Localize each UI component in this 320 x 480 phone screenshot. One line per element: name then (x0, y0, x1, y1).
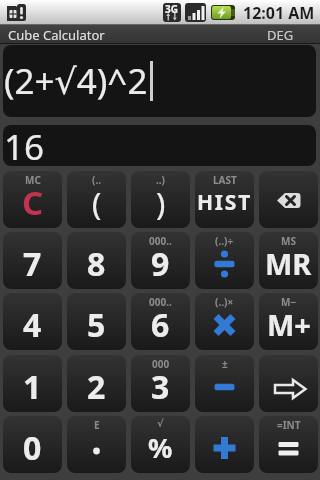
staticText: M− (281, 295, 297, 309)
button[interactable]: M− (259, 293, 318, 350)
staticText: E (94, 418, 100, 432)
staticText: MR (265, 244, 312, 283)
staticText: 2 (87, 365, 106, 409)
staticText: C (22, 180, 44, 225)
button[interactable]: 1 (3, 355, 62, 412)
staticText: 6 (151, 303, 170, 347)
staticText: Cube Calculator (8, 26, 105, 44)
button[interactable]: ± (195, 355, 254, 412)
button[interactable]: (..)× (195, 293, 254, 350)
staticText: (2+√4)^2 (4, 57, 148, 105)
button[interactable]: 0 (3, 416, 62, 473)
button[interactable]: 2 (67, 355, 126, 412)
staticText: 000 (152, 357, 170, 371)
button[interactable]: 5 (67, 293, 126, 350)
staticText: 3G (165, 2, 178, 16)
staticText: HIST (197, 188, 253, 217)
staticText: 4 (23, 303, 42, 347)
button[interactable]: 7 (3, 232, 62, 289)
staticText: 000.. (149, 295, 172, 309)
button[interactable]: MS (259, 232, 318, 289)
staticText: ) (156, 182, 166, 224)
staticText: 5 (87, 303, 106, 347)
staticText: 0 (23, 426, 42, 470)
button[interactable]: =INT (259, 416, 318, 473)
staticText: DEG (267, 26, 294, 44)
staticText: 16 (4, 125, 45, 164)
staticText: MS (281, 234, 296, 248)
button[interactable]: 000.. (131, 293, 190, 350)
staticText: 000.. (149, 234, 172, 248)
button[interactable] (259, 171, 318, 228)
staticText: (..)÷ (215, 234, 234, 248)
button[interactable] (259, 355, 318, 412)
staticText: (.. (92, 173, 102, 187)
button[interactable]: E (67, 416, 126, 473)
button[interactable]: √ (131, 416, 190, 473)
staticText: ± (222, 357, 228, 371)
staticText: M+ (267, 305, 311, 344)
staticText: 12:01 AM (243, 2, 315, 24)
staticText: ..) (156, 173, 166, 187)
staticText: % (148, 429, 173, 466)
staticText: LAST (213, 173, 237, 187)
staticText: ( (92, 182, 102, 224)
button[interactable]: ..) (131, 171, 190, 228)
staticText: 3 (151, 365, 170, 409)
button[interactable]: LAST (195, 171, 254, 228)
staticText: 7 (23, 242, 42, 286)
button[interactable]: (.. (67, 171, 126, 228)
button[interactable]: 000.. (131, 232, 190, 289)
button[interactable]: 4 (3, 293, 62, 350)
staticText: √ (157, 418, 164, 430)
button[interactable] (195, 416, 254, 473)
button[interactable]: MC (3, 171, 62, 228)
staticText: =INT (277, 418, 301, 432)
staticText: MC (25, 173, 41, 187)
staticText: 8 (87, 242, 106, 286)
button[interactable]: (..)÷ (195, 232, 254, 289)
staticText: 9 (151, 242, 170, 286)
button[interactable]: 8 (67, 232, 126, 289)
button[interactable]: 000 (131, 355, 190, 412)
staticText: (..)× (215, 295, 234, 309)
staticText: 1 (23, 365, 42, 409)
